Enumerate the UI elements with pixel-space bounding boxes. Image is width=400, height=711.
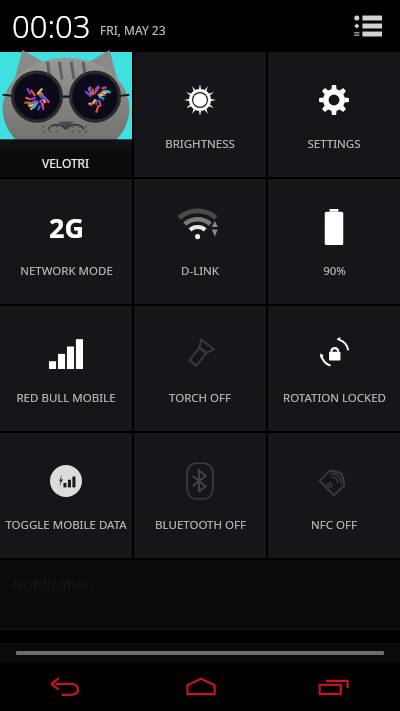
staticText: Notification xyxy=(12,574,95,594)
button[interactable]: RED BULL MOBILE xyxy=(0,306,132,431)
staticText: FRI, MAY 23 xyxy=(100,22,166,38)
button[interactable]: Back xyxy=(0,663,134,711)
staticText: 2G xyxy=(49,209,84,246)
button[interactable]: TOGGLE MOBILE DATA xyxy=(0,433,132,558)
staticText: NETWORK MODE xyxy=(20,263,113,279)
staticText: VELOTRI xyxy=(42,155,90,171)
button[interactable]: ROTATION LOCKED xyxy=(268,306,400,431)
button[interactable]: TORCH OFF xyxy=(134,306,266,431)
button[interactable]: Quick settings list xyxy=(348,6,388,46)
button[interactable]: 2G xyxy=(0,179,132,304)
staticText: NFC OFF xyxy=(311,517,357,533)
button[interactable]: Recent apps xyxy=(267,663,400,711)
button[interactable]: 90% xyxy=(268,179,400,304)
staticText: BRIGHTNESS xyxy=(165,136,235,152)
staticText: 00:03 xyxy=(12,5,91,47)
staticText: ROTATION LOCKED xyxy=(283,390,386,406)
button[interactable]: Home xyxy=(134,663,267,711)
button[interactable]: SETTINGS xyxy=(268,52,400,177)
staticText: BLUETOOTH OFF xyxy=(155,517,246,533)
button[interactable]: VELOTRI xyxy=(0,52,132,177)
button[interactable]: BRIGHTNESS xyxy=(134,52,266,177)
staticText: RED BULL MOBILE xyxy=(16,390,116,406)
staticText: 90% xyxy=(323,263,346,279)
staticText: SETTINGS xyxy=(307,136,361,152)
button[interactable]: BLUETOOTH OFF xyxy=(134,433,266,558)
staticText: TORCH OFF xyxy=(169,390,231,406)
staticText: TOGGLE MOBILE DATA xyxy=(5,517,127,533)
button[interactable]: D-LINK xyxy=(134,179,266,304)
button[interactable]: NFC OFF xyxy=(268,433,400,558)
staticText: D-LINK xyxy=(181,263,219,279)
